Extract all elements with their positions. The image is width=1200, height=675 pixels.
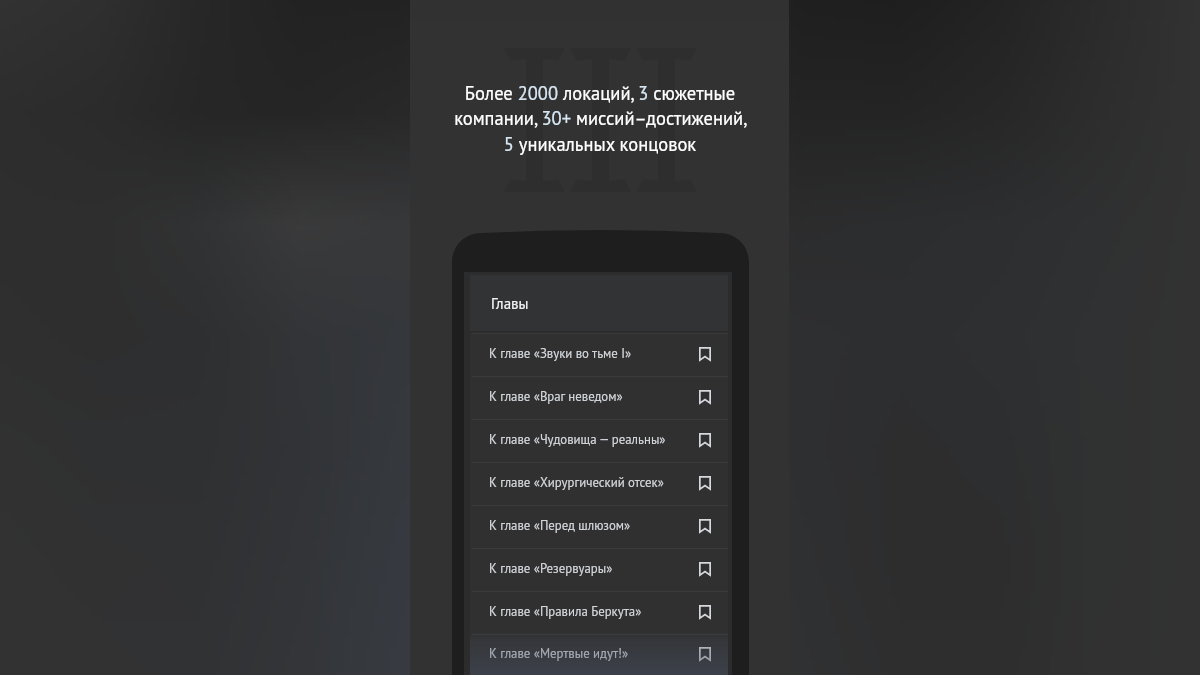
staticText: К главе «Звуки во тьме I»	[489, 345, 632, 362]
button[interactable]: К главе «Мертвые идут!»	[470, 635, 728, 675]
staticText: К главе «Хирургический отсек»	[489, 474, 664, 491]
button[interactable]: Bookmark	[696, 345, 714, 363]
staticText: К главе «Правила Беркута»	[489, 603, 642, 620]
button[interactable]: К главе «Резервуары»	[470, 549, 728, 591]
staticText: К главе «Перед шлюзом»	[489, 517, 631, 534]
button[interactable]: Bookmark	[696, 517, 714, 535]
staticText: Более 2000 локаций, 3 сюжетные компании,…	[450, 81, 750, 156]
staticText: К главе «Чудовища — реальны»	[489, 431, 666, 448]
staticText: К главе «Резервуары»	[489, 560, 613, 577]
staticText: Главы	[491, 294, 529, 313]
button[interactable]: Bookmark	[696, 645, 714, 663]
button[interactable]: К главе «Враг неведом»	[470, 377, 728, 419]
staticText: К главе «Враг неведом»	[489, 388, 623, 405]
button[interactable]: К главе «Хирургический отсек»	[470, 463, 728, 505]
staticText: К главе «Мертвые идут!»	[489, 645, 629, 662]
button[interactable]: Bookmark	[696, 603, 714, 621]
button[interactable]: К главе «Звуки во тьме I»	[470, 334, 728, 376]
button[interactable]: К главе «Перед шлюзом»	[470, 506, 728, 548]
button[interactable]: Bookmark	[696, 560, 714, 578]
button[interactable]: К главе «Чудовища — реальны»	[470, 420, 728, 462]
button[interactable]: К главе «Правила Беркута»	[470, 592, 728, 634]
button[interactable]: Bookmark	[696, 431, 714, 449]
button[interactable]: Bookmark	[696, 474, 714, 492]
button[interactable]: Главы	[470, 275, 728, 331]
button[interactable]: Bookmark	[696, 388, 714, 406]
